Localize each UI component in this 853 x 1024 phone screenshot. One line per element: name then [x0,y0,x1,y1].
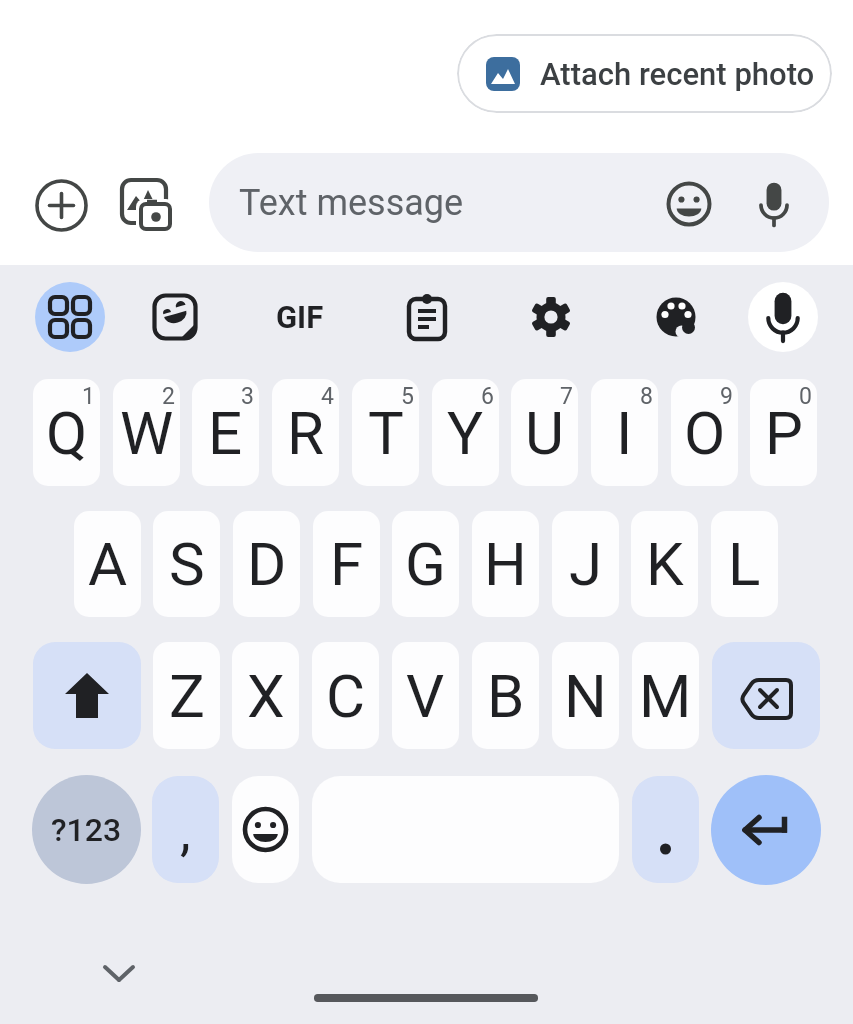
button[interactable] [119,177,179,237]
staticText: T [368,398,404,468]
button[interactable] [35,282,105,352]
button[interactable]: , [152,776,219,883]
button[interactable]: V [392,642,459,749]
staticText: Y [447,398,484,468]
button[interactable]: O [671,379,738,486]
button[interactable]: R [272,379,339,486]
staticText: R [287,398,324,468]
button[interactable] [711,775,821,885]
button[interactable]: E [192,379,259,486]
staticText: 7 [560,383,573,410]
button[interactable]: B [472,642,539,749]
staticText: F [330,529,364,599]
staticText: 6 [481,383,494,410]
staticText: C [326,661,366,731]
button[interactable]: L [711,511,778,617]
staticText: V [406,661,445,731]
staticText: G [405,529,446,599]
button[interactable] [656,297,698,339]
staticText: Text message [239,182,464,224]
staticText: Attach recent photo [540,56,815,92]
staticText: S [169,529,205,599]
staticText: B [487,661,525,731]
staticText: 9 [720,383,733,410]
staticText: N [564,661,607,731]
button[interactable]: Q [33,379,100,486]
button[interactable]: C [312,642,379,749]
button[interactable] [748,282,818,352]
staticText: W [120,398,174,468]
button[interactable]: X [232,642,299,749]
staticText: 8 [640,383,653,410]
button[interactable] [95,955,143,993]
staticText: E [208,398,243,468]
staticText: X [247,661,285,731]
button[interactable]: W [113,379,180,486]
staticText: Z [169,661,205,731]
button[interactable] [632,776,699,883]
button[interactable] [151,293,199,341]
button[interactable]: K [631,511,698,617]
staticText: I [616,398,633,468]
staticText: L [728,529,761,599]
button[interactable]: M [632,642,699,749]
staticText: M [639,661,692,731]
staticText: 3 [241,383,254,410]
button[interactable]: I [591,379,658,486]
button[interactable] [712,642,820,749]
staticText: GIF [276,299,324,335]
button[interactable] [531,297,571,337]
staticText: A [88,529,128,599]
staticText: O [684,398,726,468]
staticText: 0 [799,383,812,410]
button[interactable]: H [472,511,539,617]
button[interactable]: J [552,511,619,617]
staticText: P [765,398,803,468]
button[interactable] [232,776,299,883]
staticText: , [180,800,191,863]
button[interactable]: Attach recent photo [457,34,832,113]
button[interactable]: P [750,379,817,486]
staticText: H [484,529,527,599]
staticText: D [247,529,287,599]
staticText: U [525,398,564,468]
staticText: 4 [321,383,334,410]
button[interactable] [33,177,90,234]
staticText: ?123 [51,811,122,849]
button[interactable]: D [233,511,300,617]
staticText: 1 [82,383,95,410]
staticText: J [569,529,603,599]
staticText: 2 [162,383,175,410]
staticText: K [646,529,684,599]
staticText: Q [46,398,88,468]
button[interactable]: GIF [270,295,330,339]
button[interactable]: Y [432,379,499,486]
button[interactable]: Text message [209,153,829,252]
button[interactable] [33,642,141,749]
button[interactable]: T [352,379,419,486]
button[interactable]: ?123 [32,775,141,884]
button[interactable]: G [392,511,459,617]
button[interactable]: A [74,511,141,617]
button[interactable]: U [511,379,578,486]
button[interactable] [404,292,450,342]
button[interactable]: N [552,642,619,749]
button[interactable]: Z [153,642,220,749]
button[interactable]: F [313,511,380,617]
staticText: 5 [401,383,414,410]
button[interactable]: S [153,511,220,617]
